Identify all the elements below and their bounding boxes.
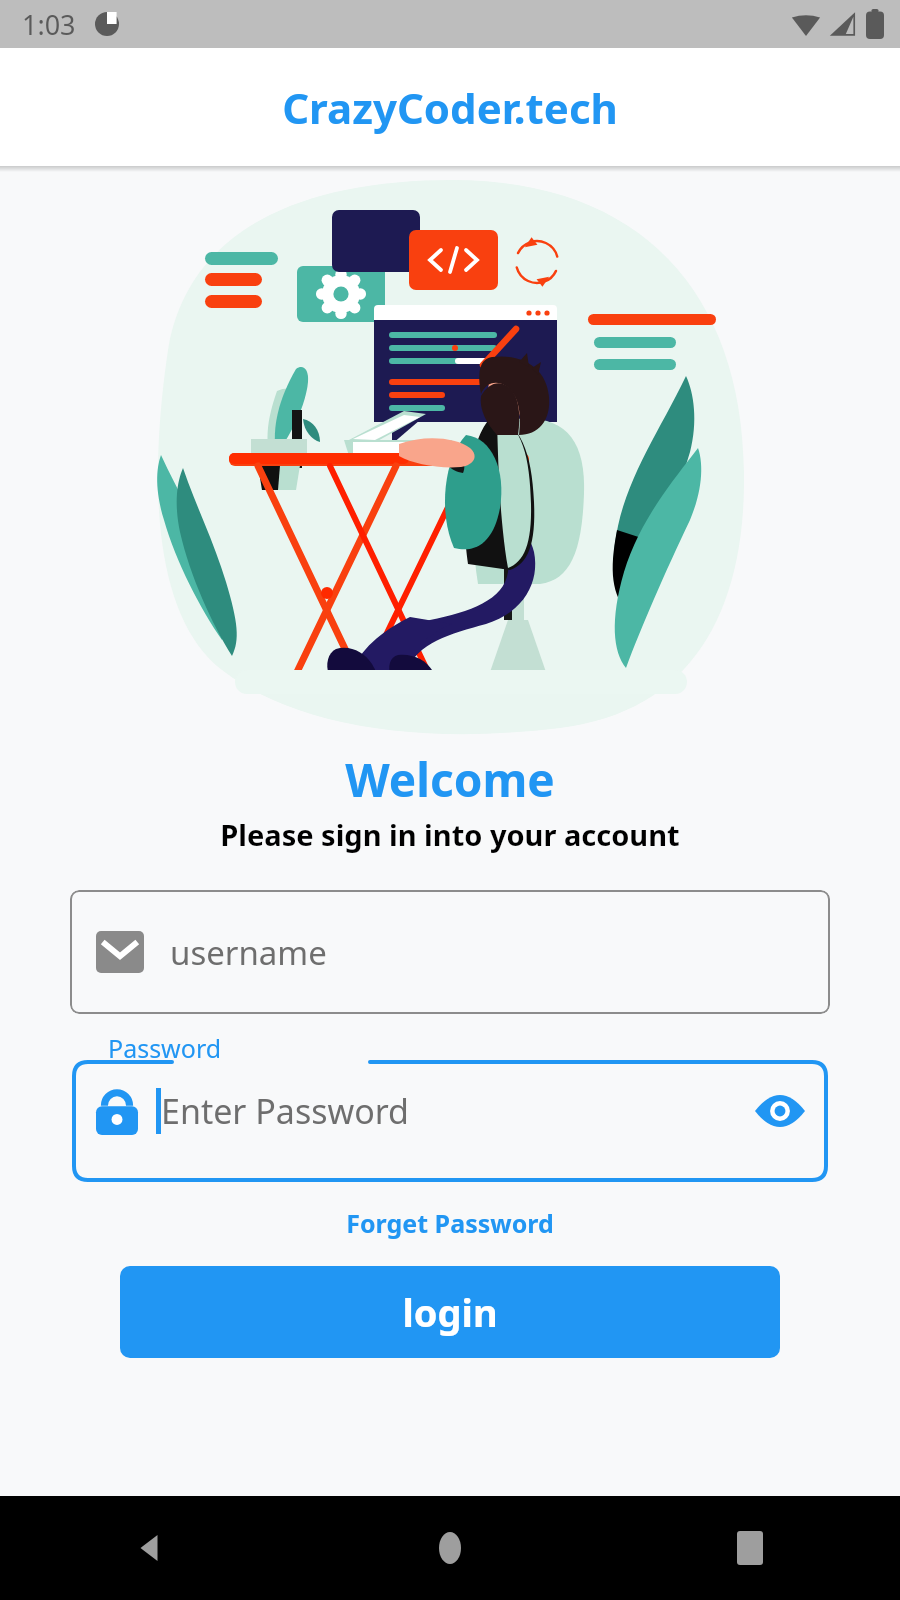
staticText: Please sign in into your account xyxy=(0,815,900,854)
button[interactable]: Forget Password xyxy=(0,1206,900,1240)
button[interactable]: login xyxy=(120,1266,780,1358)
button[interactable]: username xyxy=(70,890,830,1014)
staticText: Welcome xyxy=(0,748,900,811)
button[interactable]: Show password xyxy=(752,1083,808,1139)
button[interactable]: Enter Password xyxy=(70,1038,830,1184)
staticText: username xyxy=(170,930,327,975)
button[interactable]: Back xyxy=(0,1496,300,1600)
button[interactable]: Recents xyxy=(600,1496,900,1600)
staticText: Forget Password xyxy=(346,1206,554,1240)
staticText: Enter Password xyxy=(161,1088,410,1134)
staticText: Password xyxy=(108,1031,222,1065)
staticText: login xyxy=(402,1286,498,1338)
staticText: CrazyCoder.tech xyxy=(282,79,618,136)
staticText: 1:03 xyxy=(22,6,76,43)
button[interactable]: Home xyxy=(300,1496,600,1600)
